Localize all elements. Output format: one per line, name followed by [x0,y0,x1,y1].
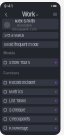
staticText: Set a status [4,33,24,38]
button[interactable]: Back [3,11,8,17]
staticText: ‹ [4,9,7,20]
button[interactable]: List Tasks [2,98,58,104]
button[interactable]: Record Incident [2,79,58,86]
staticText: Module [3,51,15,55]
staticText: 9:41 [4,4,13,8]
staticText: Record Incident [9,80,35,85]
staticText: Most frequent mode [4,42,38,47]
staticText: Checkpoints [9,117,30,121]
staticText: ⌄ [36,12,39,17]
button[interactable]: Show Tours [2,58,58,67]
staticText: alex@work.com [12,27,37,31]
staticText: Alex Smith [15,19,35,23]
button[interactable]: Checkpoints [2,116,58,122]
staticText: Functions [3,71,19,75]
staticText: Schedule [9,107,25,112]
staticText: List Tasks [9,98,26,103]
staticText: Knowledge [9,126,28,130]
staticText: Metrics [9,89,23,94]
button[interactable]: Set a status [2,32,58,39]
button[interactable]: Knowledge [2,125,58,131]
staticText: Work [22,11,35,18]
button[interactable]: Schedule [2,107,58,113]
staticText: Show Tours [9,60,30,65]
button[interactable]: Metrics [2,88,58,95]
staticText: Available [17,24,32,27]
button[interactable]: Alex Smith [2,19,58,29]
button[interactable]: Most frequent mode [2,41,58,48]
